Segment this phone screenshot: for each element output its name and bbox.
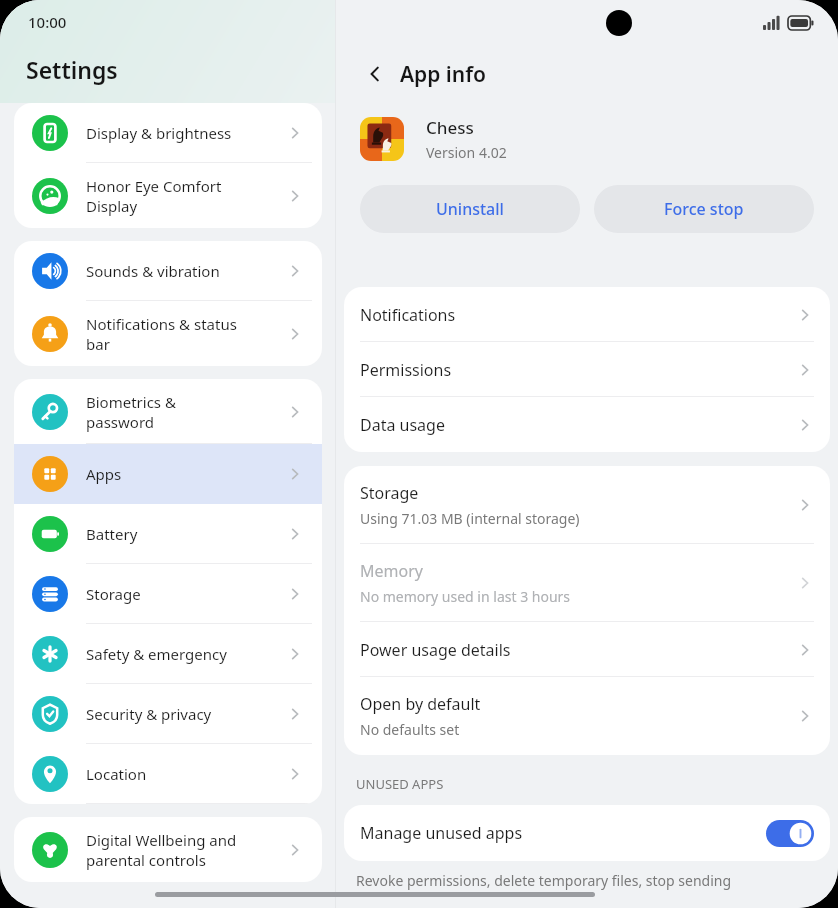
button[interactable]: Back [360, 59, 390, 89]
button[interactable]: Apps [14, 444, 322, 504]
staticText: Display & brightness [86, 123, 286, 143]
button[interactable]: Force stop [594, 185, 814, 233]
staticText: Storage [360, 482, 419, 504]
button[interactable]: Memory [344, 544, 830, 622]
button[interactable]: Data usage [344, 397, 830, 452]
staticText: UNUSED APPS [356, 775, 444, 793]
button[interactable]: Open by default [344, 677, 830, 755]
staticText: Safety & emergency [86, 644, 286, 664]
staticText: Chess [426, 116, 474, 139]
staticText: Storage [86, 584, 286, 604]
staticText: No memory used in last 3 hours [360, 587, 571, 606]
button[interactable]: Manage unused apps [344, 805, 830, 861]
staticText: Settings [26, 54, 118, 85]
button[interactable]: Display & brightness [14, 103, 322, 163]
staticText: Battery [86, 524, 286, 544]
button[interactable]: Location [14, 744, 322, 804]
staticText: Permissions [360, 359, 796, 381]
button[interactable]: Biometrics & password [14, 379, 322, 444]
staticText: Manage unused apps [360, 822, 766, 844]
staticText: App info [400, 60, 486, 89]
staticText: Notifications & status bar [86, 314, 286, 354]
staticText: Data usage [360, 414, 796, 436]
staticText: Revoke permissions, delete temporary fil… [356, 871, 732, 890]
button[interactable]: Safety & emergency [14, 624, 322, 684]
staticText: Location [86, 764, 286, 784]
staticText: Apps [86, 464, 286, 484]
staticText: Honor Eye Comfort Display [86, 176, 286, 216]
staticText: Security & privacy [86, 704, 286, 724]
staticText: Force stop [664, 198, 744, 220]
staticText: Biometrics & password [86, 392, 286, 432]
button[interactable]: Security & privacy [14, 684, 322, 744]
button[interactable]: Honor Eye Comfort Display [14, 163, 322, 228]
staticText: No defaults set [360, 720, 460, 739]
button[interactable]: Uninstall [360, 185, 580, 233]
staticText: 10:00 [28, 12, 67, 32]
staticText: Using 71.03 MB (internal storage) [360, 509, 580, 528]
staticText: Sounds & vibration [86, 261, 286, 281]
button[interactable]: Permissions [344, 342, 830, 397]
staticText: Open by default [360, 693, 481, 715]
button[interactable]: Storage [14, 564, 322, 624]
staticText: Digital Wellbeing and parental controls [86, 830, 286, 870]
button[interactable]: Power usage details [344, 622, 830, 677]
button[interactable]: Battery [14, 504, 322, 564]
button[interactable]: Sounds & vibration [14, 241, 322, 301]
staticText: Power usage details [360, 639, 796, 661]
button[interactable]: Notifications & status bar [14, 301, 322, 366]
button[interactable]: Digital Wellbeing and parental controls [14, 817, 322, 882]
staticText: Uninstall [436, 198, 504, 220]
button[interactable]: Storage [344, 466, 830, 544]
staticText: Notifications [360, 304, 796, 326]
staticText: Version 4.02 [426, 143, 507, 162]
staticText: Memory [360, 560, 423, 582]
button[interactable]: Notifications [344, 287, 830, 342]
